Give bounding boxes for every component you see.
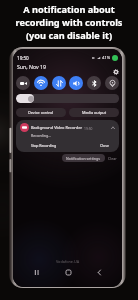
- button[interactable]: Clear: [105, 155, 120, 162]
- staticText: 19:50: [17, 55, 29, 61]
- button[interactable]: Media output: [69, 108, 119, 117]
- button[interactable]: Stop Recording: [20, 142, 59, 149]
- button[interactable]: Home: [63, 267, 73, 277]
- button[interactable]: Volume: [69, 76, 83, 90]
- staticText: Sun, Nov 19: [17, 63, 46, 70]
- staticText: Recording...: [31, 133, 52, 138]
- staticText: Background Video Recorder: [31, 125, 82, 130]
- button[interactable]: Back: [94, 267, 104, 277]
- staticText: 41%: [102, 55, 111, 61]
- button[interactable]: Wi-Fi: [34, 76, 48, 90]
- staticText: Clear: [108, 156, 117, 161]
- staticText: Device control: [28, 110, 54, 115]
- button[interactable]: Mobile data: [52, 76, 66, 90]
- button[interactable]: Device control: [16, 108, 66, 117]
- button[interactable]: Bluetooth: [87, 76, 101, 90]
- staticText: Stop Recording: [31, 143, 57, 148]
- button[interactable]: Notification settings: [62, 154, 105, 162]
- button[interactable]: Close: [96, 142, 115, 149]
- staticText: 19:50: [84, 126, 93, 130]
- button[interactable]: Location: [105, 76, 119, 90]
- button[interactable]: Brightness: [16, 94, 119, 103]
- button[interactable]: Camera: [16, 76, 30, 90]
- button[interactable]: Settings: [111, 67, 120, 76]
- button[interactable]: Recents: [31, 267, 41, 277]
- staticText: Media output: [82, 110, 107, 115]
- staticText: A notification about recording with cont…: [2, 3, 136, 42]
- staticText: Notification settings: [66, 156, 101, 161]
- staticText: Close: [100, 143, 109, 148]
- staticText: Vodafone.UA: [13, 259, 122, 264]
